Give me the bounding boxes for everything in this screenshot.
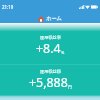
staticText: 21:19 — [2, 4, 14, 10]
button[interactable]: 運用収益額 — [0, 69, 100, 91]
staticText: 運用収益額 — [40, 69, 61, 74]
staticText: 運用収益率 — [40, 35, 61, 40]
staticText: +5,888 — [29, 74, 68, 91]
staticText: 円 — [68, 84, 72, 89]
button[interactable]: 運用収益率 — [0, 35, 100, 57]
other: Home — [38, 16, 44, 22]
staticText: % — [61, 50, 65, 55]
staticText: ホーム — [46, 15, 62, 22]
staticText: +8.4 — [36, 40, 61, 57]
button[interactable]: Home — [38, 15, 62, 22]
